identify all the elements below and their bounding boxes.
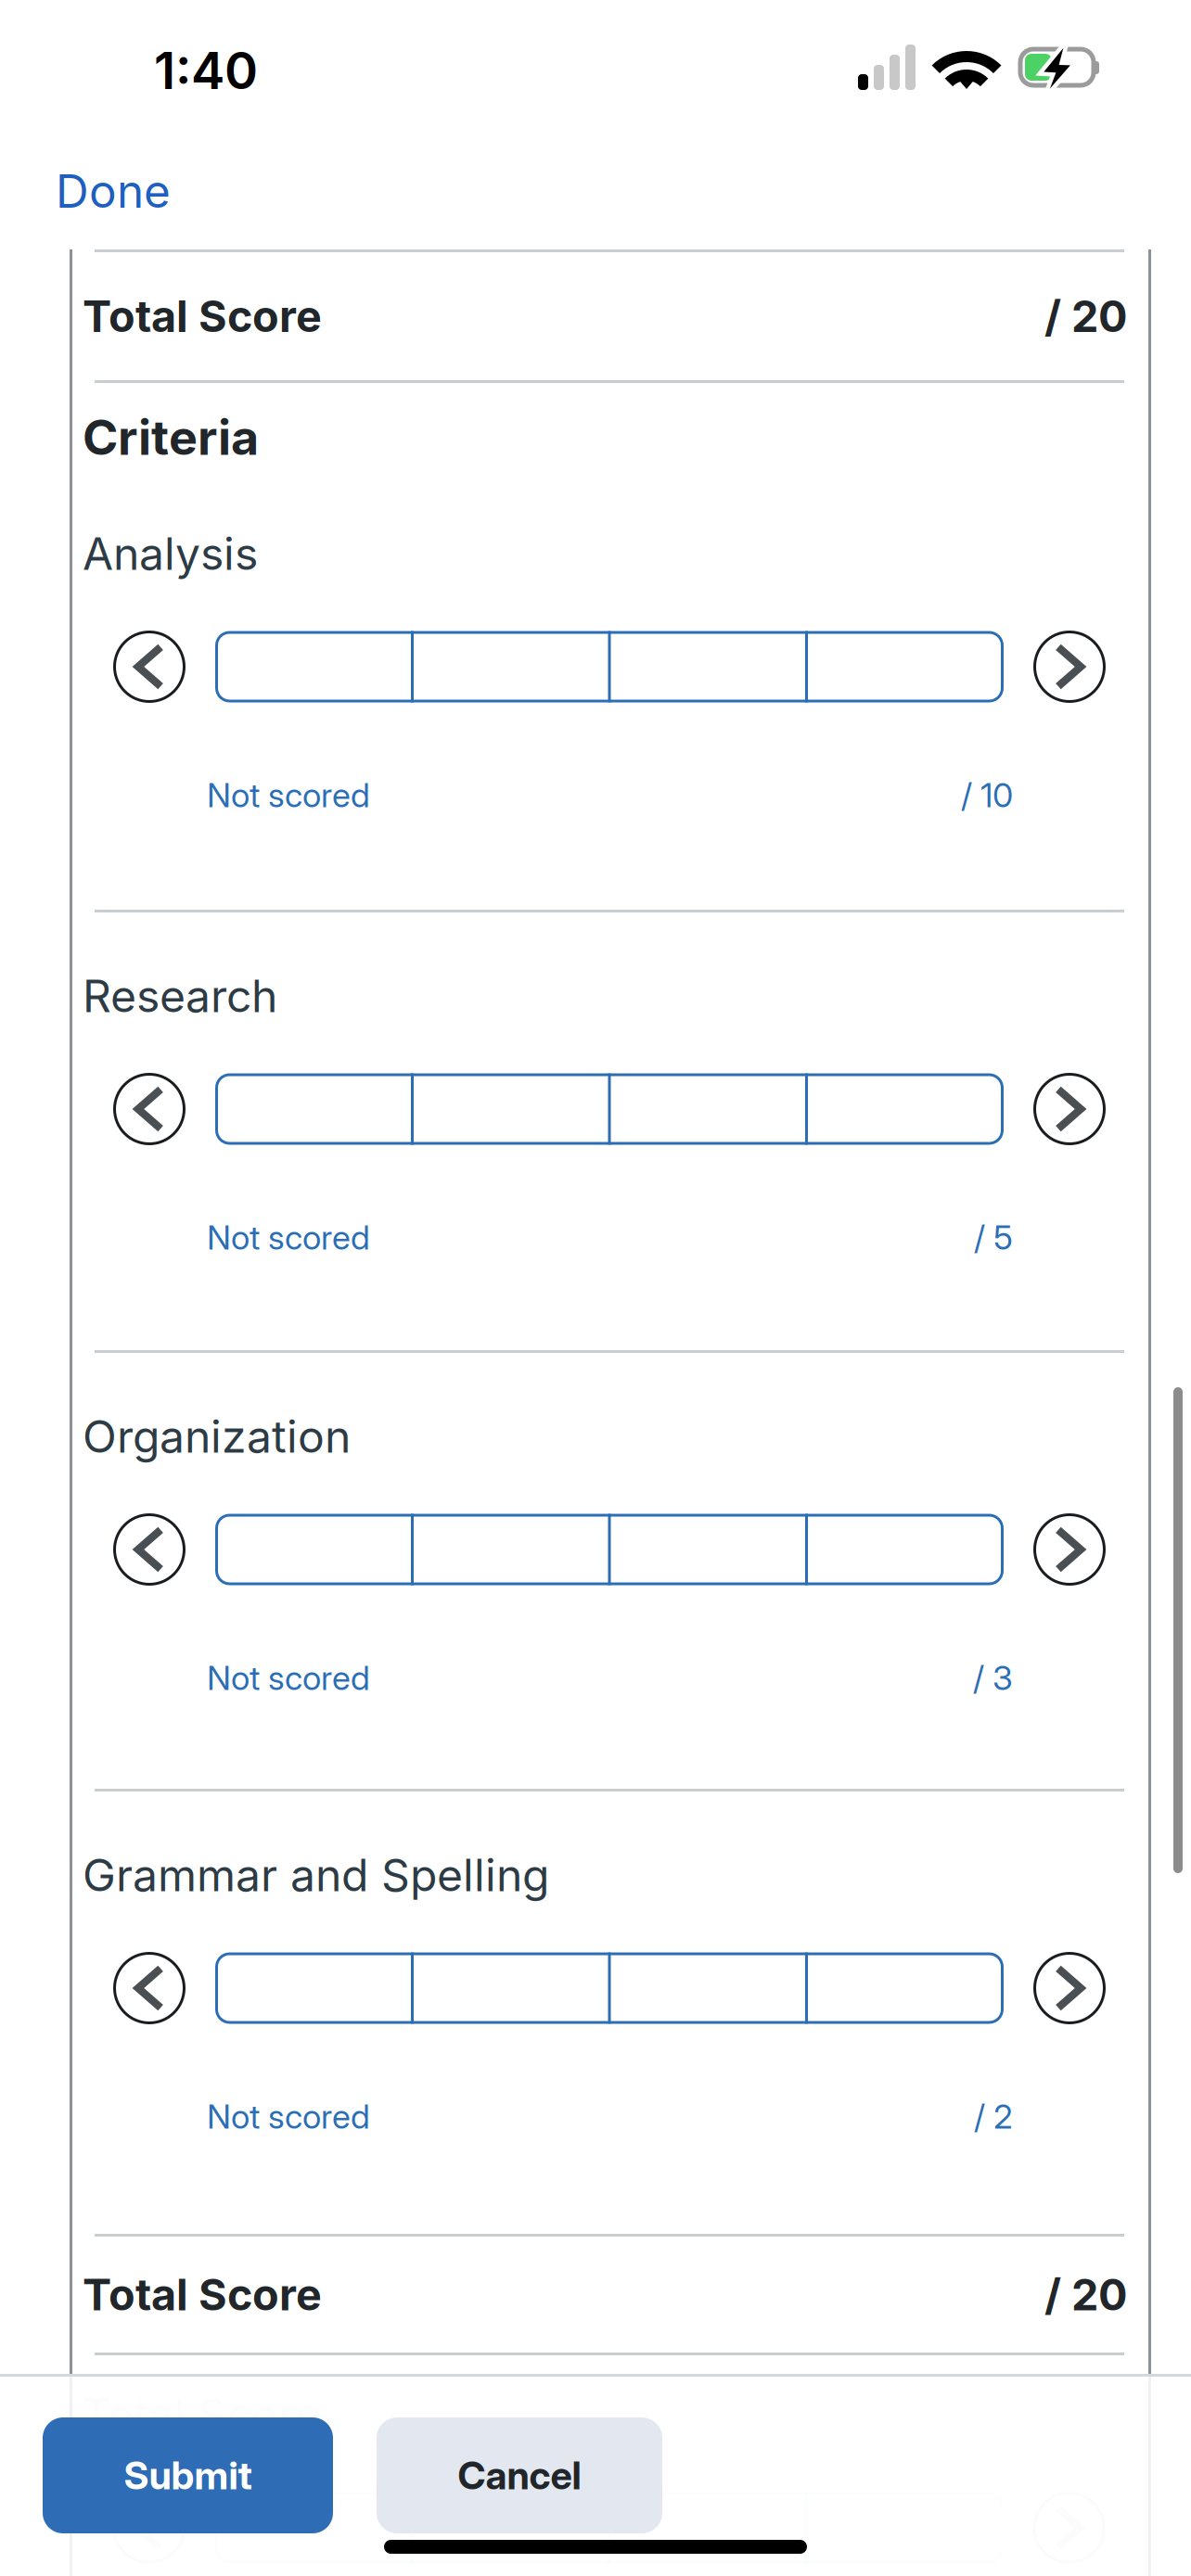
button[interactable]: Decrease Organization score [113, 1513, 186, 1586]
button[interactable]: Decrease Grammar and Spelling score [113, 1952, 186, 2024]
staticText: Done [56, 163, 171, 219]
button[interactable]: Increase Research score [1033, 1073, 1106, 1145]
staticText: Research [83, 969, 277, 1023]
staticText: Analysis [83, 527, 258, 581]
staticText: Submit [124, 2452, 252, 2499]
staticText: Grammar and Spelling [83, 1848, 549, 1902]
button[interactable]: Submit [43, 2417, 333, 2533]
staticText: / 20 [1044, 290, 1127, 342]
staticText: Total Score [82, 2388, 320, 2442]
staticText: Total Score [83, 290, 322, 342]
staticText: / 3 [973, 1658, 1013, 1698]
button[interactable]: Decrease Research score [113, 1073, 186, 1145]
staticText: Total Score [83, 2268, 322, 2321]
staticText: Organization [83, 1409, 351, 1463]
staticText: / 5 [974, 1217, 1013, 1258]
staticText: Not scored [207, 775, 370, 815]
button[interactable]: Increase Analysis score [1033, 631, 1106, 703]
button[interactable]: Increase Grammar and Spelling score [1033, 1952, 1106, 2024]
staticText: / 20 [1044, 2268, 1127, 2321]
staticText: / 10 [961, 775, 1013, 815]
staticText: Not scored [207, 1217, 370, 1258]
staticText: Criteria [83, 408, 259, 466]
staticText: / 2 [974, 2096, 1013, 2137]
staticText: Not scored [207, 1658, 370, 1698]
staticText: Not scored [207, 2096, 370, 2137]
button[interactable]: Done [0, 163, 1191, 219]
button[interactable]: Increase Organization score [1033, 1513, 1106, 1586]
staticText: 1:40 [154, 40, 258, 101]
button[interactable]: Decrease Total Score score [113, 2492, 185, 2564]
button[interactable]: Decrease Analysis score [113, 631, 186, 703]
staticText: Cancel [458, 2452, 581, 2499]
button[interactable]: Cancel [377, 2417, 662, 2533]
